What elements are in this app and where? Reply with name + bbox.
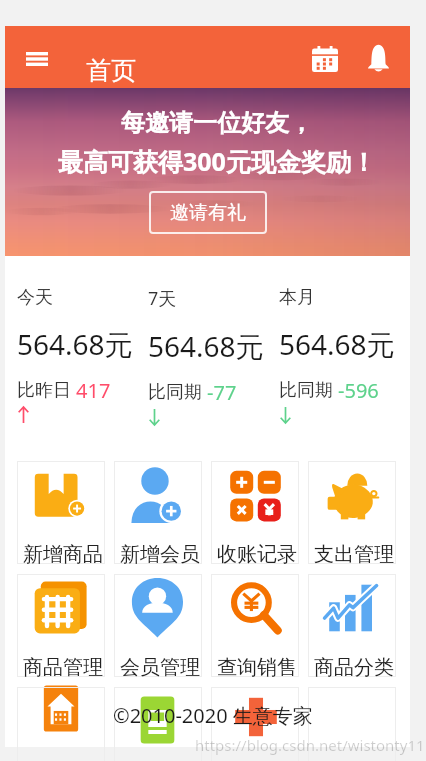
button[interactable] — [17, 461, 105, 564]
staticText: 本月 — [279, 286, 315, 309]
button[interactable] — [211, 574, 299, 677]
button[interactable] — [308, 687, 396, 761]
staticText: 商品分类 — [314, 655, 394, 680]
staticText: 支出管理 — [314, 542, 394, 567]
staticText: 每邀请一位好友， — [121, 108, 313, 138]
button[interactable] — [114, 461, 202, 564]
button[interactable] — [308, 574, 396, 677]
button[interactable]: 本月 — [279, 286, 410, 423]
staticText: 新增商品 — [23, 542, 103, 567]
staticText: 7天 — [148, 286, 177, 311]
staticText: 新增会员 — [120, 542, 200, 567]
button[interactable]: Calendar — [304, 38, 346, 80]
staticText: 比昨日 — [17, 379, 71, 402]
button[interactable]: 7天 — [148, 286, 279, 425]
staticText: https://blog.csdn.net/wistonty11 — [195, 735, 425, 755]
staticText: 会员管理 — [120, 655, 200, 680]
button[interactable] — [17, 687, 105, 761]
staticText: -77 — [207, 379, 237, 406]
button[interactable]: Menu — [16, 38, 58, 80]
staticText: -596 — [338, 377, 379, 404]
staticText: 查询销售 — [217, 655, 297, 680]
staticText: 首页 — [86, 55, 136, 86]
staticText: 邀请有礼 — [170, 201, 246, 225]
staticText: 417 — [76, 377, 111, 404]
button[interactable] — [114, 574, 202, 677]
button[interactable]: Notifications — [357, 37, 399, 79]
button[interactable] — [211, 687, 299, 761]
staticText: 比同期 — [148, 381, 202, 404]
staticText: 564.68元 — [148, 327, 264, 365]
staticText: 比同期 — [279, 379, 333, 402]
button[interactable]: 今天 — [17, 286, 148, 423]
staticText: 今天 — [17, 286, 53, 309]
button[interactable] — [308, 461, 396, 564]
staticText: 564.68元 — [17, 325, 133, 363]
button[interactable]: 邀请有礼 — [149, 191, 267, 234]
button[interactable] — [17, 574, 105, 677]
staticText: 商品管理 — [23, 655, 103, 680]
button[interactable] — [114, 687, 202, 761]
staticText: 564.68元 — [279, 325, 395, 363]
button[interactable] — [211, 461, 299, 564]
staticText: ©2010-2020 生意专家 — [113, 702, 313, 729]
staticText: 收账记录 — [217, 542, 297, 567]
staticText: 最高可获得300元现金奖励！ — [58, 144, 376, 178]
